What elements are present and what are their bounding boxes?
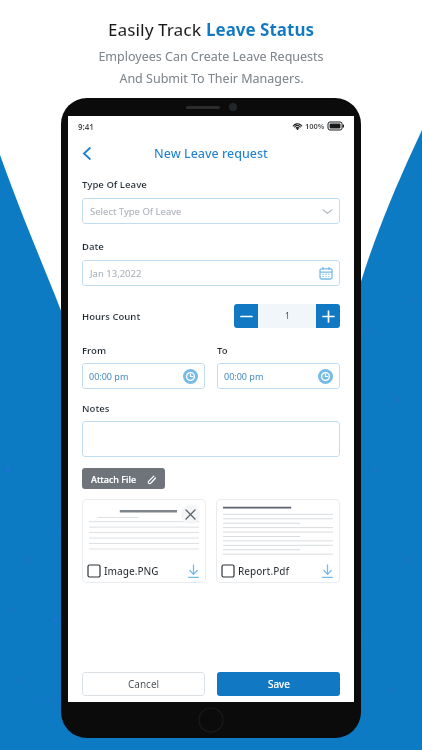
staticText: Report.Pdf: [238, 564, 290, 578]
button[interactable]: 00:00 pm: [82, 363, 205, 389]
staticText: Jan 13,2022: [90, 267, 142, 280]
staticText: 1: [285, 310, 290, 322]
staticText: 9:41: [78, 121, 94, 132]
button[interactable]: Report.Pdf: [216, 499, 340, 583]
staticText: 00:00 pm: [224, 370, 264, 382]
staticText: From: [82, 344, 107, 357]
staticText: Save: [268, 677, 290, 691]
button[interactable]: Increase: [316, 304, 340, 328]
button[interactable]: Remove attachment: [181, 505, 200, 524]
button[interactable]: Cancel: [82, 672, 205, 696]
button[interactable]: Remove attachment: [82, 499, 206, 583]
button[interactable]: Attach File: [82, 468, 165, 489]
staticText: 100%: [305, 121, 325, 131]
button[interactable]: Jan 13,2022: [82, 260, 340, 286]
button[interactable]: Select Type Of Leave: [82, 198, 340, 224]
button[interactable]: Decrease: [234, 304, 258, 328]
staticText: Easily Track: [108, 18, 206, 41]
staticText: New Leave request: [154, 145, 268, 162]
staticText: Type Of Leave: [82, 178, 147, 191]
staticText: Notes: [82, 402, 110, 415]
button[interactable]: [82, 421, 340, 457]
button[interactable]: Download: [187, 565, 200, 578]
staticText: Hours Count: [82, 310, 141, 323]
staticText: Leave Status: [206, 18, 315, 41]
button[interactable]: Back: [74, 140, 100, 166]
staticText: 00:00 pm: [89, 370, 129, 382]
staticText: To: [217, 344, 228, 357]
staticText: Employees Can Create Leave Requests: [98, 48, 324, 65]
staticText: Cancel: [128, 677, 160, 691]
button[interactable]: Save: [217, 672, 340, 696]
button[interactable]: 00:00 pm: [217, 363, 340, 389]
button[interactable]: Download: [321, 565, 334, 578]
staticText: And Submit To Their Managers.: [119, 70, 304, 87]
staticText: Image.PNG: [104, 564, 159, 578]
staticText: Attach File: [91, 473, 137, 485]
staticText: Select Type Of Leave: [90, 205, 182, 218]
staticText: Date: [82, 240, 104, 253]
